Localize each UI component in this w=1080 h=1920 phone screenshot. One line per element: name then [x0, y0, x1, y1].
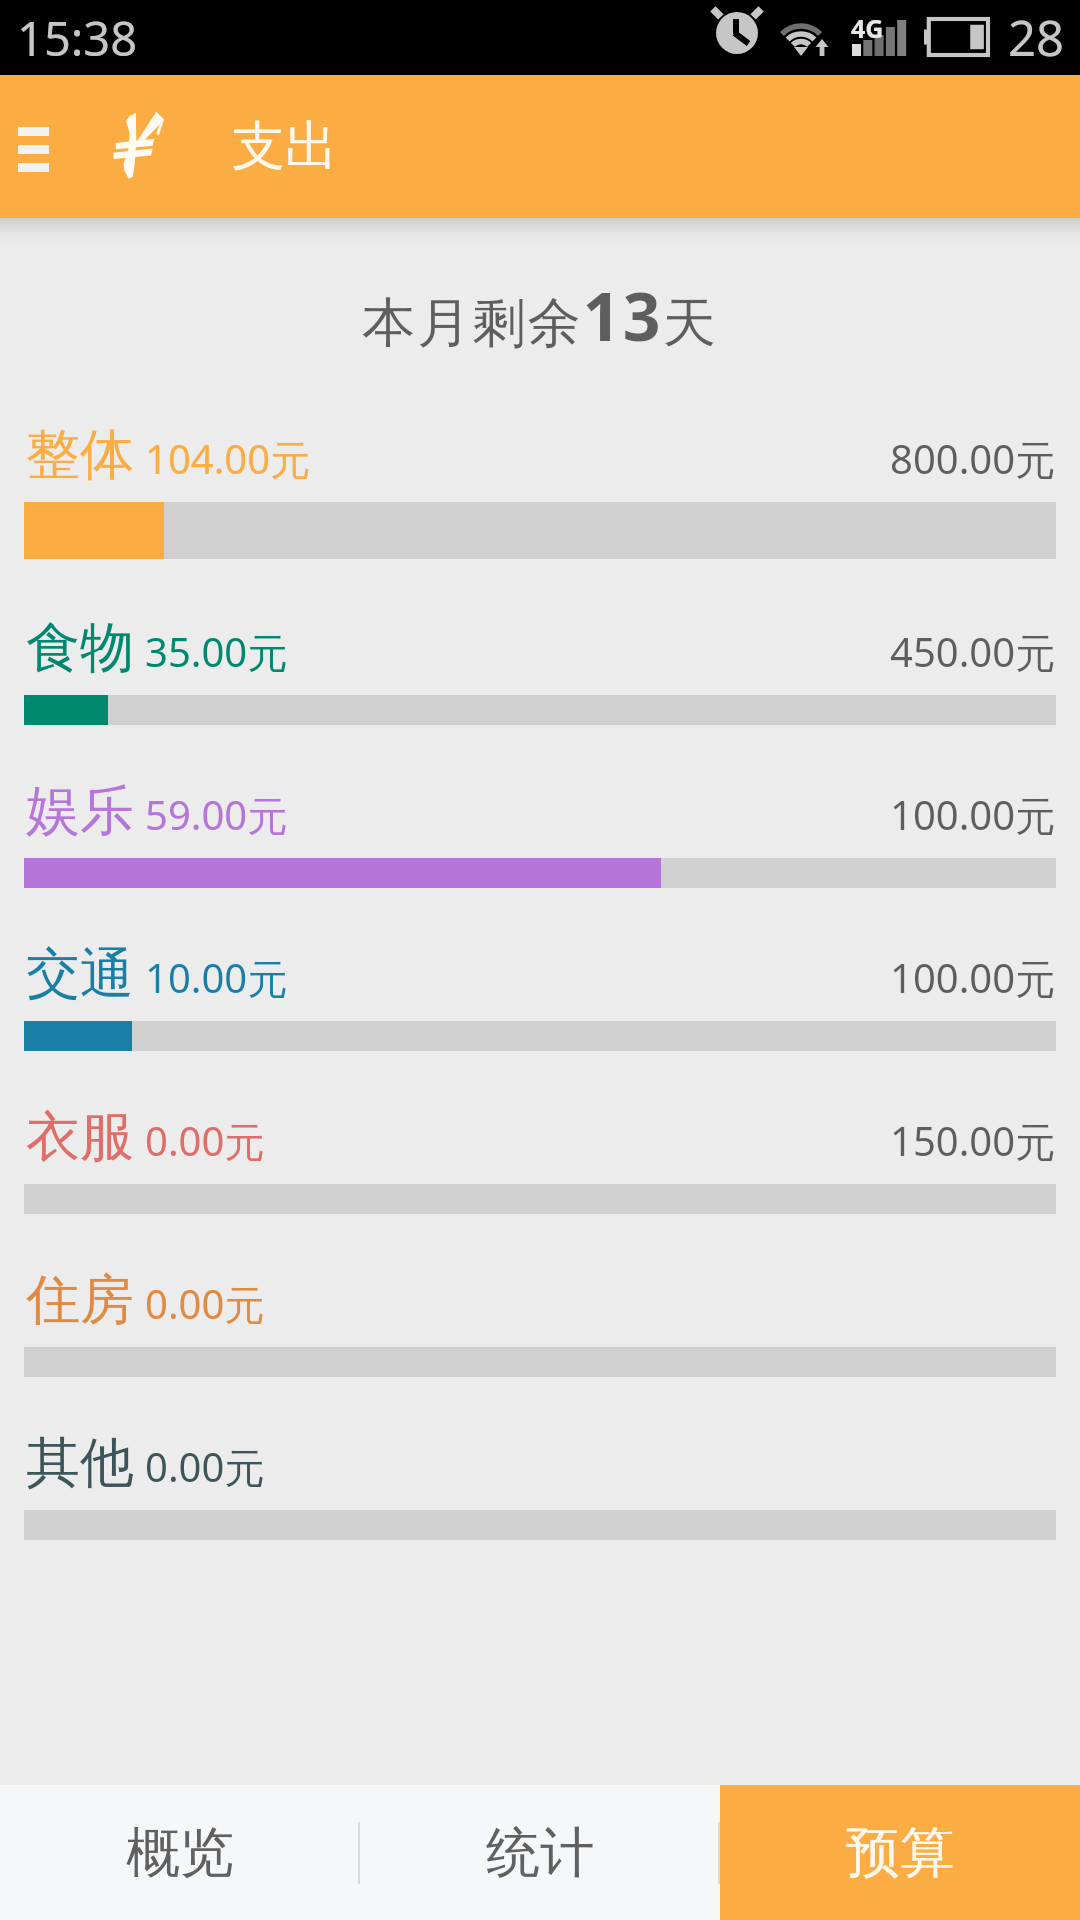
- staticText: 预算: [846, 1819, 954, 1887]
- staticText: 35.00元: [145, 624, 288, 679]
- button[interactable]: 衣服: [0, 1103, 1080, 1214]
- staticText: 0.00元: [145, 1276, 265, 1331]
- staticText: 800.00元: [890, 431, 1056, 486]
- staticText: 0.00元: [145, 1113, 265, 1168]
- staticText: 10.00元: [145, 950, 288, 1005]
- staticText: 概览: [126, 1819, 234, 1887]
- staticText: 住房: [26, 1266, 134, 1334]
- staticText: 交通: [26, 940, 134, 1008]
- button[interactable]: 统计: [360, 1785, 720, 1920]
- staticText: 娱乐: [26, 777, 134, 845]
- staticText: 支出: [232, 113, 338, 180]
- button[interactable]: Switch currency: [109, 72, 169, 215]
- staticText: 28: [1008, 4, 1065, 71]
- staticText: 本月剩余13天: [0, 270, 1080, 360]
- staticText: 0.00元: [145, 1439, 265, 1494]
- staticText: 15:38: [17, 6, 138, 70]
- staticText: 100.00元: [890, 950, 1056, 1005]
- button[interactable]: 食物: [0, 614, 1080, 725]
- staticText: 450.00元: [890, 624, 1056, 679]
- button[interactable]: 其他: [0, 1429, 1080, 1540]
- button[interactable]: 整体: [0, 421, 1080, 559]
- staticText: 衣服: [26, 1103, 134, 1171]
- button[interactable]: 交通: [0, 940, 1080, 1051]
- staticText: 104.00元: [145, 431, 311, 486]
- button[interactable]: Open navigation menu: [18, 75, 49, 218]
- button[interactable]: 娱乐: [0, 777, 1080, 888]
- button[interactable]: 住房: [0, 1266, 1080, 1377]
- staticText: 食物: [26, 614, 134, 682]
- staticText: 4G: [851, 11, 884, 45]
- staticText: 150.00元: [890, 1113, 1056, 1168]
- staticText: 59.00元: [145, 787, 288, 842]
- staticText: 整体: [26, 421, 134, 489]
- staticText: 其他: [26, 1429, 134, 1497]
- staticText: 统计: [486, 1819, 594, 1887]
- staticText: 100.00元: [890, 787, 1056, 842]
- button[interactable]: 预算: [720, 1785, 1080, 1920]
- button[interactable]: 概览: [0, 1785, 360, 1920]
